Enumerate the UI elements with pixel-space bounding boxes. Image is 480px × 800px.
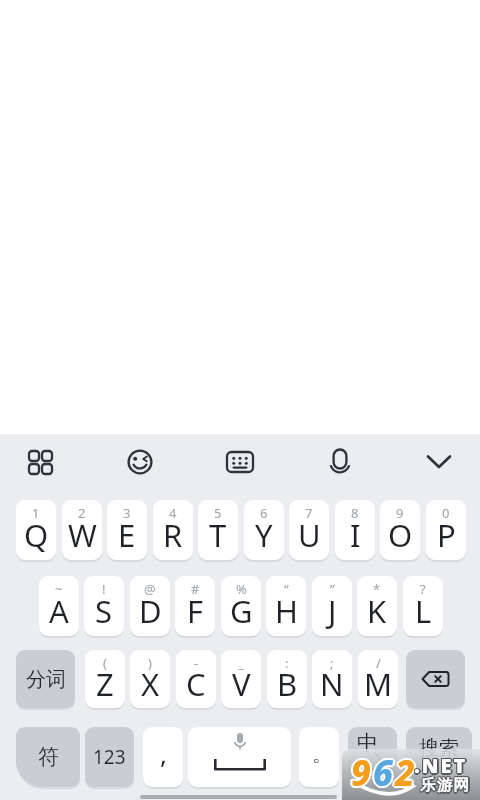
button[interactable]: 3 <box>107 500 147 560</box>
staticText: .NET <box>415 751 469 778</box>
staticText: R <box>163 514 183 556</box>
staticText: 0 <box>442 504 450 522</box>
button[interactable]: - <box>176 650 216 708</box>
staticText: 乐游网 <box>422 775 473 795</box>
staticText: 符 <box>38 744 59 770</box>
button[interactable]: / <box>358 650 398 708</box>
button[interactable]: 9 <box>380 500 420 560</box>
button[interactable] <box>188 727 291 787</box>
staticText: B <box>277 663 298 705</box>
staticText: “ <box>284 580 289 598</box>
staticText: - <box>194 654 199 672</box>
staticText: 9 <box>352 748 372 796</box>
staticText: 8 <box>351 504 359 522</box>
button[interactable] <box>116 438 164 486</box>
staticText: , <box>160 736 167 771</box>
button[interactable]: , <box>143 727 183 787</box>
staticText: 中 <box>357 730 378 756</box>
button[interactable]: ) <box>130 650 170 708</box>
staticText: 分词 <box>26 667 66 692</box>
button[interactable]: 。 <box>299 727 339 787</box>
button[interactable] <box>16 438 64 486</box>
button[interactable]: 分词 <box>16 650 75 708</box>
staticText: P <box>437 514 456 556</box>
staticText: N <box>320 663 344 705</box>
staticText: ( <box>103 654 107 672</box>
staticText: 6 <box>375 749 395 797</box>
staticText: 9 <box>351 751 371 799</box>
button[interactable]: ! <box>84 576 124 636</box>
staticText: 5 <box>214 504 222 522</box>
staticText: 9 <box>349 749 369 797</box>
button[interactable] <box>415 438 463 486</box>
button[interactable]: : <box>267 650 307 708</box>
button[interactable]: 0 <box>426 500 466 560</box>
button[interactable]: @ <box>130 576 170 636</box>
staticText: @ <box>144 580 156 598</box>
staticText: 6 <box>373 749 393 797</box>
staticText: 乐游网 <box>419 774 470 794</box>
staticText: .NET <box>413 751 467 778</box>
staticText: V <box>232 663 251 705</box>
staticText: .NET <box>413 752 467 779</box>
button[interactable]: 4 <box>153 500 193 560</box>
staticText: 1 <box>32 504 40 522</box>
button[interactable]: 2 <box>62 500 102 560</box>
staticText: T <box>209 514 227 556</box>
staticText: 3 <box>123 504 131 522</box>
button[interactable]: ” <box>312 576 352 636</box>
button[interactable]: ( <box>85 650 125 708</box>
button[interactable]: “ <box>266 576 306 636</box>
button[interactable]: # <box>175 576 215 636</box>
staticText: 9 <box>350 748 370 796</box>
button[interactable] <box>406 650 465 708</box>
staticText: 6 <box>372 748 392 796</box>
button[interactable]: 8 <box>335 500 375 560</box>
staticText: 7 <box>305 504 313 522</box>
button[interactable]: 7 <box>289 500 329 560</box>
staticText: 9 <box>353 749 373 797</box>
staticText: 6 <box>374 748 394 796</box>
staticText: 2 <box>396 748 416 796</box>
button[interactable]: ~ <box>39 576 79 636</box>
button[interactable]: 符 <box>16 727 80 787</box>
button[interactable]: 中 <box>348 727 397 787</box>
staticText: W <box>68 514 97 556</box>
staticText: 6 <box>374 750 394 798</box>
button[interactable]: % <box>221 576 261 636</box>
button[interactable]: _ <box>221 650 261 708</box>
staticText: M <box>364 663 393 705</box>
staticText: 乐游网 <box>421 776 472 796</box>
button[interactable] <box>216 438 264 486</box>
staticText: ) <box>148 654 152 672</box>
button[interactable]: 5 <box>198 500 238 560</box>
staticText: % <box>236 580 247 598</box>
staticText: ” <box>330 580 335 598</box>
staticText: 乐游网 <box>419 775 470 795</box>
staticText: _ <box>238 654 244 672</box>
staticText: H <box>275 590 298 632</box>
button[interactable]: ; <box>312 650 352 708</box>
staticText: 9 <box>396 504 404 522</box>
staticText: 2 <box>397 749 417 797</box>
staticText: 4 <box>169 504 177 522</box>
staticText: C <box>186 663 206 705</box>
button[interactable]: 123 <box>85 727 134 787</box>
button[interactable]: ? <box>403 576 443 636</box>
button[interactable]: * <box>357 576 397 636</box>
button[interactable] <box>316 438 364 486</box>
staticText: 2 <box>395 747 415 795</box>
staticText: I <box>350 514 361 556</box>
staticText: 乐游网 <box>421 774 472 794</box>
button[interactable]: 1 <box>16 500 56 560</box>
staticText: 2 <box>393 749 413 797</box>
staticText: K <box>367 590 387 632</box>
button[interactable]: 搜索 <box>406 727 472 787</box>
staticText: 乐游网 <box>419 776 470 796</box>
staticText: Q <box>24 514 49 556</box>
staticText: # <box>191 580 200 598</box>
staticText: : <box>285 654 289 672</box>
button[interactable]: 6 <box>244 500 284 560</box>
staticText: 乐游网 <box>420 775 471 795</box>
staticText: 2 <box>394 750 414 798</box>
